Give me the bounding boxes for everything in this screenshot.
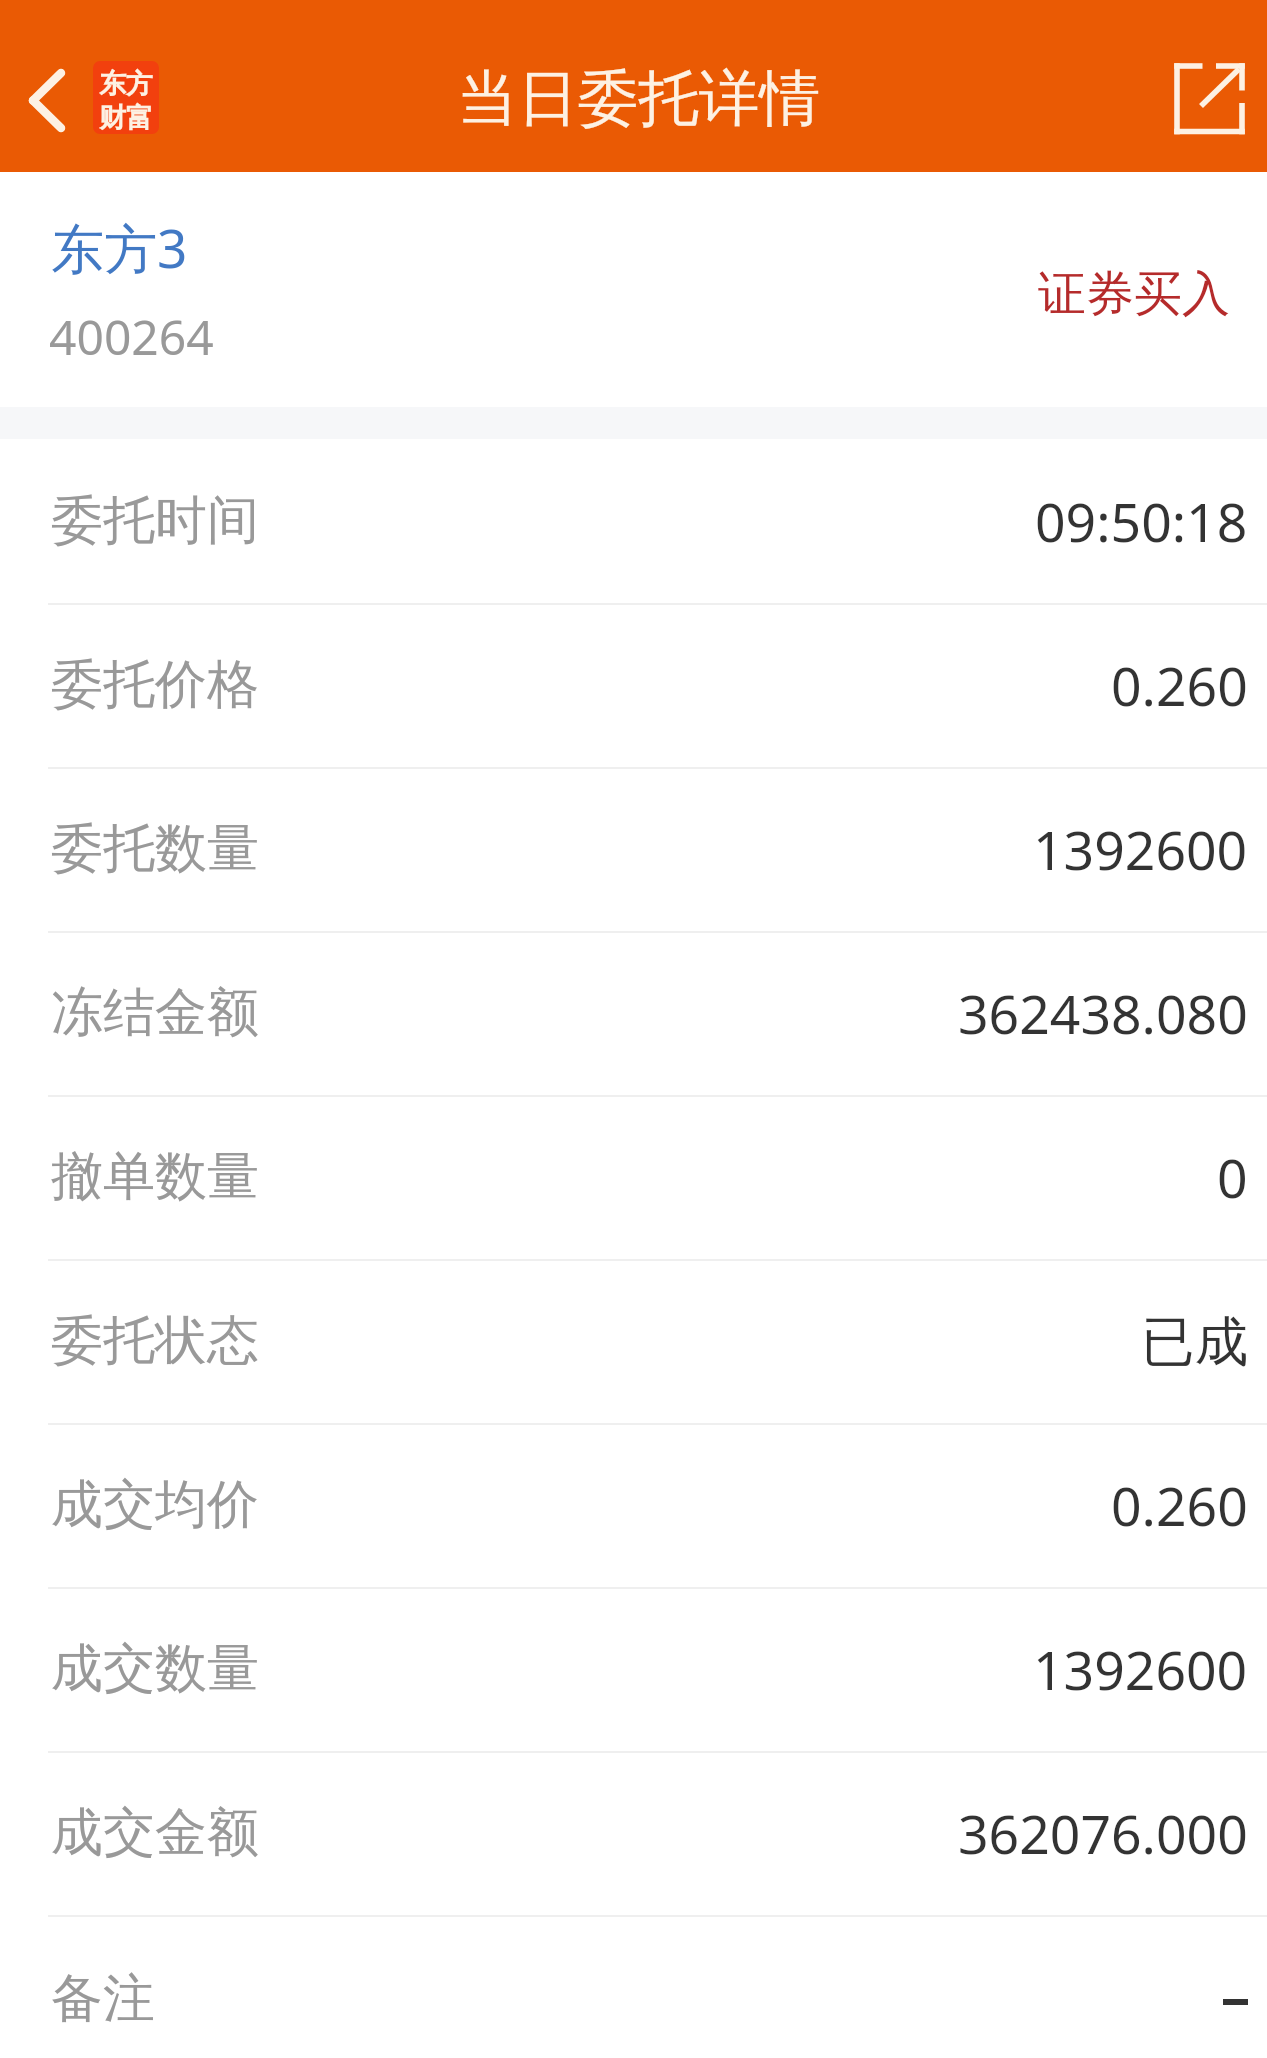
staticText: 成交金额 [51, 1800, 259, 1866]
staticText: 成交均价 [51, 1472, 259, 1538]
button[interactable]: 成交数量 [0, 1587, 1267, 1751]
staticText: 撤单数量 [51, 1144, 259, 1210]
staticText: 0.260 [1111, 649, 1248, 722]
button[interactable]: 委托价格 [0, 603, 1267, 767]
button[interactable]: Back [7, 60, 87, 140]
button[interactable]: 成交金额 [0, 1751, 1267, 1915]
staticText: 成交数量 [51, 1636, 259, 1702]
staticText: 362076.000 [958, 1797, 1248, 1870]
staticText: 委托价格 [51, 652, 259, 718]
button[interactable]: 委托状态 [0, 1259, 1267, 1423]
button[interactable]: 冻结金额 [0, 931, 1267, 1095]
staticText: 400264 [49, 304, 214, 369]
staticText: 当日委托详情 [457, 61, 820, 137]
staticText: 362438.080 [958, 977, 1248, 1050]
button[interactable]: 备注 [0, 1915, 1267, 2058]
staticText: 1392600 [1033, 813, 1248, 886]
staticText: 委托时间 [51, 488, 259, 554]
staticText: 备注 [51, 1966, 155, 2032]
staticText: 委托状态 [51, 1308, 259, 1374]
button[interactable]: 委托数量 [0, 767, 1267, 931]
staticText: 0.260 [1111, 1469, 1248, 1542]
staticText: 09:50:18 [1035, 485, 1248, 558]
staticText: 东方3 [51, 211, 188, 283]
button[interactable]: 委托时间 [0, 439, 1267, 603]
staticText: 证券买入 [1038, 264, 1230, 324]
staticText: 1392600 [1033, 1633, 1248, 1706]
button[interactable]: 东方3 [0, 172, 1267, 407]
button[interactable]: Share [1162, 50, 1258, 146]
staticText: 委托数量 [51, 816, 259, 882]
button[interactable]: 撤单数量 [0, 1095, 1267, 1259]
button[interactable]: 成交均价 [0, 1423, 1267, 1587]
staticText: 财富 [99, 101, 153, 134]
staticText: 东方 [99, 67, 153, 101]
staticText: 冻结金额 [51, 980, 259, 1046]
staticText: 0 [1217, 1141, 1248, 1214]
staticText: 已成 [1141, 1308, 1248, 1375]
